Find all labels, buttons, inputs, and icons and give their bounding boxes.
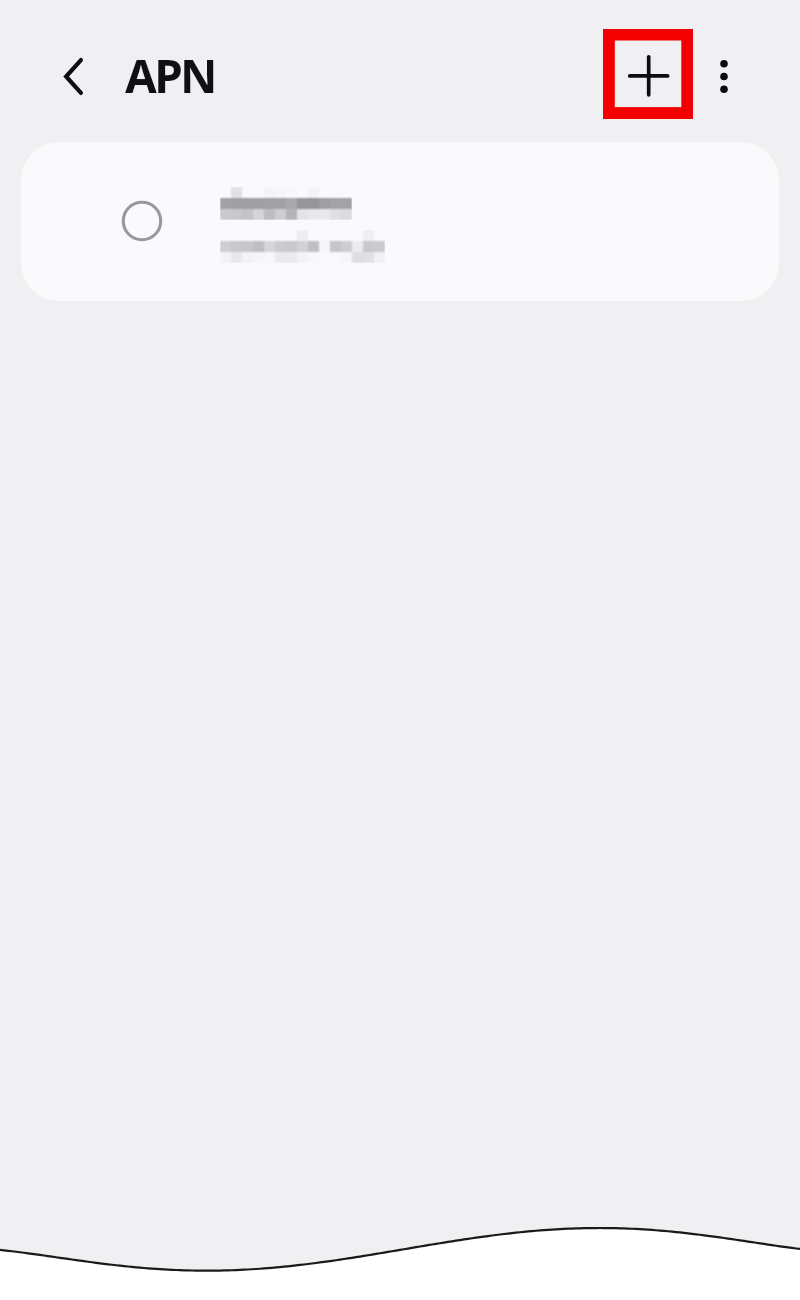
button[interactable]: APN entry <box>21 142 779 301</box>
staticText: APN <box>125 44 215 107</box>
button[interactable]: More options <box>700 52 748 100</box>
button[interactable]: Navigate up <box>42 45 104 107</box>
button[interactable]: Add APN <box>603 29 693 119</box>
